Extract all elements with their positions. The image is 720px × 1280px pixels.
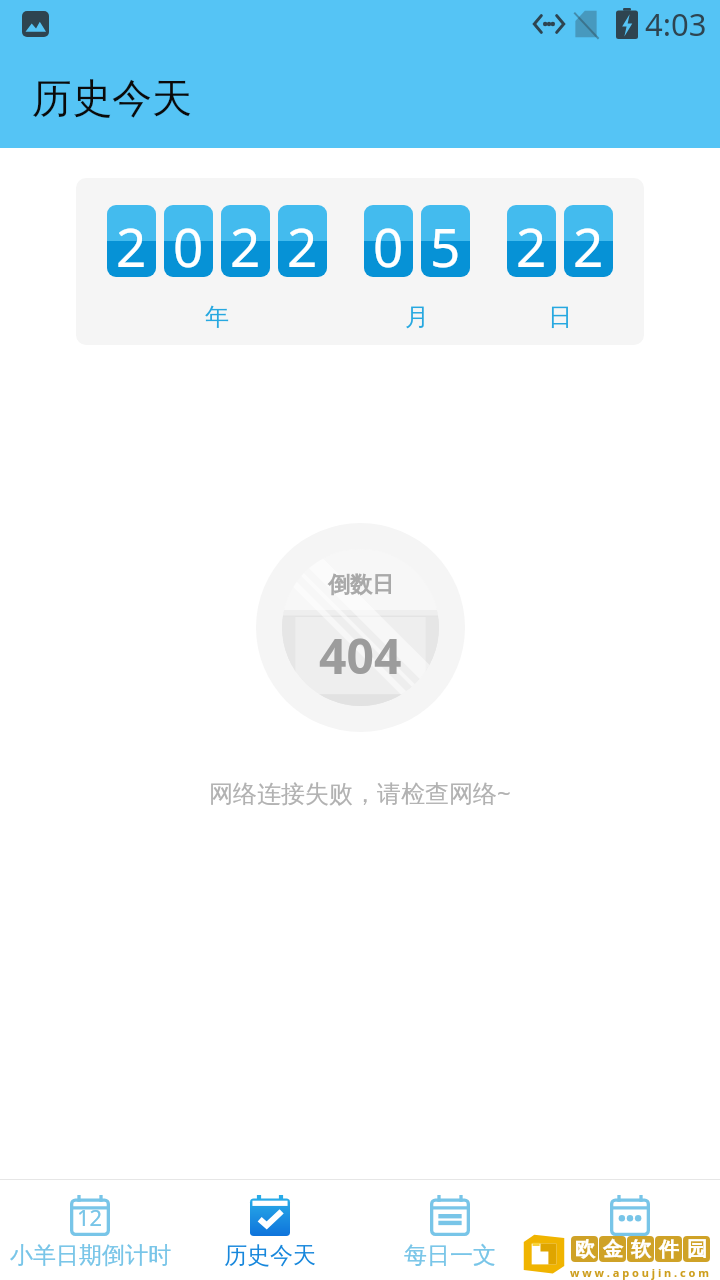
staticText: 软 [631, 1237, 651, 1262]
staticText: 件 [659, 1237, 679, 1262]
button[interactable]: History today [180, 1180, 360, 1280]
staticText: 0 [173, 210, 204, 277]
button[interactable]: Select date 2022-05-22 [76, 178, 644, 345]
staticText: 2 [230, 210, 261, 277]
staticText: 金 [603, 1237, 623, 1262]
staticText: 4:03 [645, 3, 707, 45]
staticText: w w w . a p o u j i n . c o m [570, 1265, 710, 1280]
button[interactable]: More [540, 1180, 720, 1280]
button[interactable]: Daily article [360, 1180, 540, 1280]
staticText: 倒数日 [328, 571, 394, 599]
staticText: 5 [430, 210, 461, 277]
staticText: 2 [573, 210, 604, 277]
staticText: 月 [405, 302, 429, 332]
staticText: 12 [77, 1202, 103, 1232]
staticText: 2 [287, 210, 318, 277]
button[interactable]: Countdown [0, 1180, 180, 1280]
staticText: 历史今天 [32, 73, 192, 123]
staticText: 日 [548, 302, 572, 332]
staticText: 年 [205, 302, 229, 332]
staticText: 网络连接失败，请检查网络~ [209, 776, 511, 809]
staticText: 2 [516, 210, 547, 277]
staticText: 404 [319, 623, 402, 688]
staticText: 2 [116, 210, 147, 277]
staticText: 每日一文 [404, 1241, 496, 1270]
staticText: 园 [687, 1237, 707, 1262]
staticText: 0 [373, 210, 404, 277]
staticText: 欧 [575, 1237, 595, 1262]
staticText: 历史今天 [224, 1241, 316, 1270]
staticText: 小羊日期倒计时 [10, 1241, 171, 1270]
